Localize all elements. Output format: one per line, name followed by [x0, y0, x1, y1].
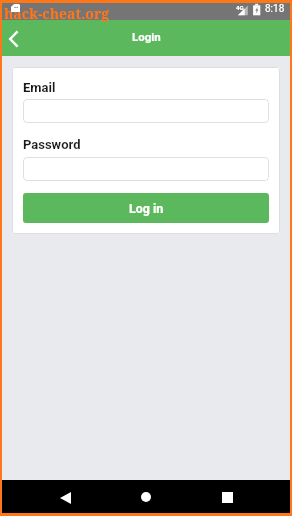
button[interactable]: Back	[2, 20, 25, 56]
button[interactable]: Log in	[23, 193, 269, 223]
staticText: Log in	[129, 201, 164, 216]
staticText: Email	[23, 80, 56, 95]
button[interactable]: Back	[2, 480, 128, 513]
staticText: Login	[132, 30, 161, 43]
button[interactable]: Recents	[164, 480, 290, 513]
staticText: hack-cheat.org	[4, 4, 110, 23]
staticText: 4G	[236, 4, 244, 11]
button[interactable]: Home	[128, 480, 164, 513]
staticText: Password	[23, 137, 81, 152]
button[interactable]	[23, 157, 269, 181]
staticText: 8:18	[265, 3, 285, 15]
button[interactable]	[23, 99, 269, 123]
